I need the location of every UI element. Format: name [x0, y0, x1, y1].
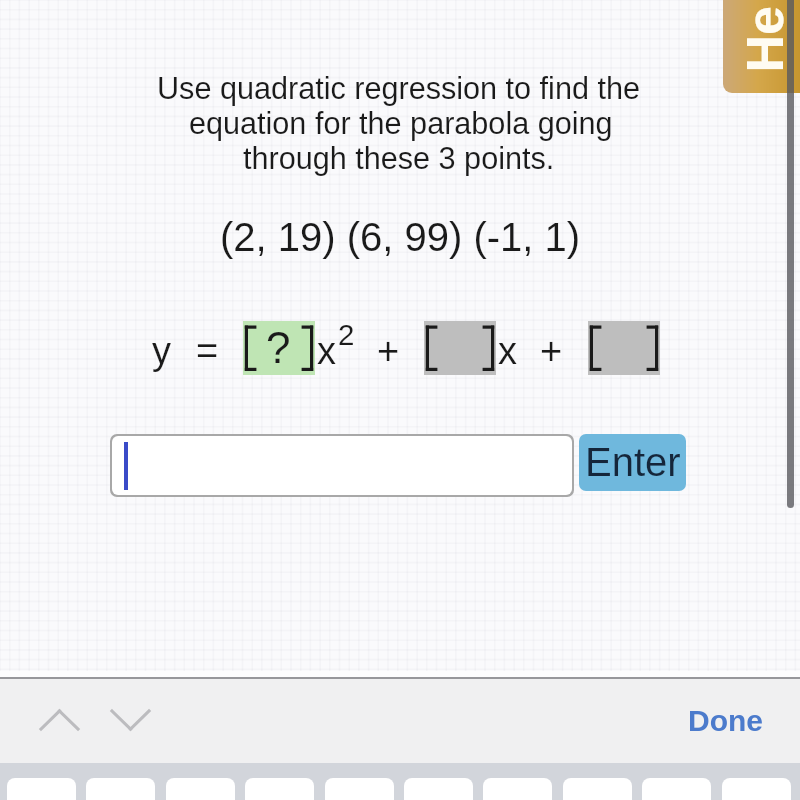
button[interactable] [563, 778, 632, 800]
button[interactable] [483, 778, 552, 800]
staticText: ? [266, 323, 291, 372]
button[interactable] [404, 778, 473, 800]
staticText: equation for the parabola going [189, 106, 613, 140]
staticText: x [317, 330, 336, 372]
button[interactable]: Next field [99, 694, 161, 745]
staticText: x [498, 330, 517, 372]
staticText: = [196, 330, 219, 372]
staticText: + [377, 330, 400, 372]
button[interactable] [722, 778, 791, 800]
button[interactable] [588, 321, 660, 375]
button[interactable]: Help [723, 0, 800, 93]
staticText: Use quadratic regression to find the [157, 71, 640, 105]
button[interactable] [110, 434, 574, 497]
button[interactable] [424, 321, 496, 375]
staticText: Help [735, 0, 795, 72]
staticText: Enter [585, 440, 681, 485]
staticText: (2, 19) (6, 99) (-1, 1) [220, 215, 581, 260]
staticText: 2 [338, 318, 355, 351]
button[interactable]: Previous field [28, 694, 90, 745]
button[interactable]: ? [243, 321, 315, 375]
button[interactable] [245, 778, 314, 800]
staticText: Done [688, 704, 763, 738]
staticText: + [540, 330, 563, 372]
staticText: y [152, 330, 171, 372]
button[interactable] [325, 778, 394, 800]
button[interactable] [166, 778, 235, 800]
button[interactable] [86, 778, 155, 800]
staticText: through these 3 points. [243, 141, 555, 175]
button[interactable]: Done [683, 700, 767, 742]
button[interactable]: Enter [579, 434, 686, 491]
button[interactable] [642, 778, 711, 800]
button[interactable] [7, 778, 76, 800]
